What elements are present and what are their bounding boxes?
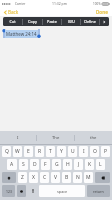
button[interactable]: Z bbox=[18, 172, 27, 183]
button[interactable]: Dictation bbox=[28, 185, 37, 197]
staticText: 123 bbox=[6, 189, 12, 194]
staticText: C bbox=[43, 174, 47, 181]
button[interactable]: The bbox=[37, 131, 74, 144]
button[interactable]: D bbox=[30, 159, 39, 170]
button[interactable]: S bbox=[19, 159, 28, 170]
button[interactable]: Paste bbox=[43, 17, 61, 26]
button[interactable]: U bbox=[68, 146, 77, 157]
staticText: O bbox=[93, 148, 97, 155]
button[interactable]: C bbox=[40, 172, 49, 183]
button[interactable]: W bbox=[13, 146, 22, 157]
button[interactable]: More options bbox=[100, 17, 109, 26]
button[interactable]: P bbox=[101, 146, 110, 157]
staticText: P bbox=[104, 148, 108, 155]
button[interactable]: Emoji bbox=[17, 185, 26, 197]
button[interactable]: space bbox=[39, 185, 85, 197]
button[interactable]: G bbox=[52, 159, 61, 170]
button[interactable]: Back bbox=[3, 8, 20, 16]
staticText: L bbox=[99, 161, 102, 168]
staticText: H bbox=[66, 161, 70, 168]
button[interactable]: Y bbox=[57, 146, 66, 157]
button[interactable]: J bbox=[74, 159, 83, 170]
staticText: The bbox=[52, 135, 60, 141]
button[interactable]: X bbox=[29, 172, 38, 183]
button[interactable]: R bbox=[35, 146, 44, 157]
button[interactable]: Copy bbox=[23, 17, 42, 26]
staticText: U bbox=[71, 148, 75, 155]
button[interactable]: Done bbox=[95, 8, 109, 16]
staticText: Y bbox=[60, 148, 63, 155]
staticText: Cut bbox=[9, 19, 16, 24]
staticText: Back bbox=[8, 9, 19, 15]
button[interactable]: B bbox=[62, 172, 71, 183]
staticText: K bbox=[88, 161, 92, 168]
staticText: G bbox=[55, 161, 59, 168]
button[interactable]: the bbox=[75, 131, 112, 144]
staticText: I bbox=[17, 135, 19, 141]
staticText: B bbox=[65, 174, 69, 181]
staticText: E bbox=[27, 148, 30, 155]
button[interactable]: F bbox=[41, 159, 50, 170]
button[interactable]: Backspace bbox=[95, 172, 110, 183]
staticText: Define bbox=[84, 19, 96, 24]
staticText: S bbox=[22, 161, 25, 168]
button[interactable]: B/U bbox=[62, 17, 80, 26]
button[interactable]: Q bbox=[2, 146, 11, 157]
button[interactable]: 123 bbox=[2, 185, 15, 197]
staticText: Matthew 24:14 bbox=[6, 31, 37, 37]
staticText: return bbox=[93, 189, 104, 194]
button[interactable]: H bbox=[63, 159, 72, 170]
button[interactable]: I bbox=[79, 146, 88, 157]
staticText: V bbox=[54, 174, 58, 181]
button[interactable]: A bbox=[7, 159, 17, 170]
staticText: M bbox=[86, 174, 91, 181]
staticText: I bbox=[83, 148, 85, 155]
button[interactable]: E bbox=[24, 146, 33, 157]
button[interactable]: O bbox=[90, 146, 99, 157]
button[interactable]: Define bbox=[81, 17, 99, 26]
button[interactable]: Matthew 24:14 bbox=[6, 31, 37, 37]
staticText: the bbox=[90, 135, 97, 141]
button[interactable]: N bbox=[73, 172, 82, 183]
staticText: D bbox=[33, 161, 37, 168]
button[interactable]: return bbox=[87, 185, 110, 197]
staticText: F bbox=[44, 161, 47, 168]
staticText: Copy bbox=[28, 19, 37, 24]
button[interactable]: Shift bbox=[2, 172, 16, 183]
staticText: J bbox=[78, 161, 80, 168]
staticText: Carrier bbox=[15, 2, 26, 6]
button[interactable]: I bbox=[0, 131, 36, 144]
staticText: 100% bbox=[93, 2, 101, 6]
staticText: Z bbox=[21, 174, 24, 181]
button[interactable]: M bbox=[84, 172, 93, 183]
button[interactable]: Cut bbox=[3, 17, 22, 26]
staticText: N bbox=[76, 174, 80, 181]
staticText: W bbox=[15, 148, 20, 155]
button[interactable]: K bbox=[85, 159, 94, 170]
staticText: A bbox=[10, 161, 14, 168]
staticText: T bbox=[49, 148, 52, 155]
staticText: space bbox=[57, 189, 68, 194]
staticText: X bbox=[32, 174, 35, 181]
staticText: R bbox=[38, 148, 42, 155]
staticText: Done bbox=[96, 9, 108, 15]
button[interactable]: V bbox=[51, 172, 60, 183]
button[interactable]: T bbox=[46, 146, 55, 157]
staticText: B/U bbox=[68, 19, 75, 24]
staticText: Paste bbox=[47, 19, 57, 24]
staticText: 11:32 pm bbox=[52, 1, 67, 6]
staticText: Q bbox=[5, 148, 9, 155]
button[interactable]: L bbox=[96, 159, 105, 170]
